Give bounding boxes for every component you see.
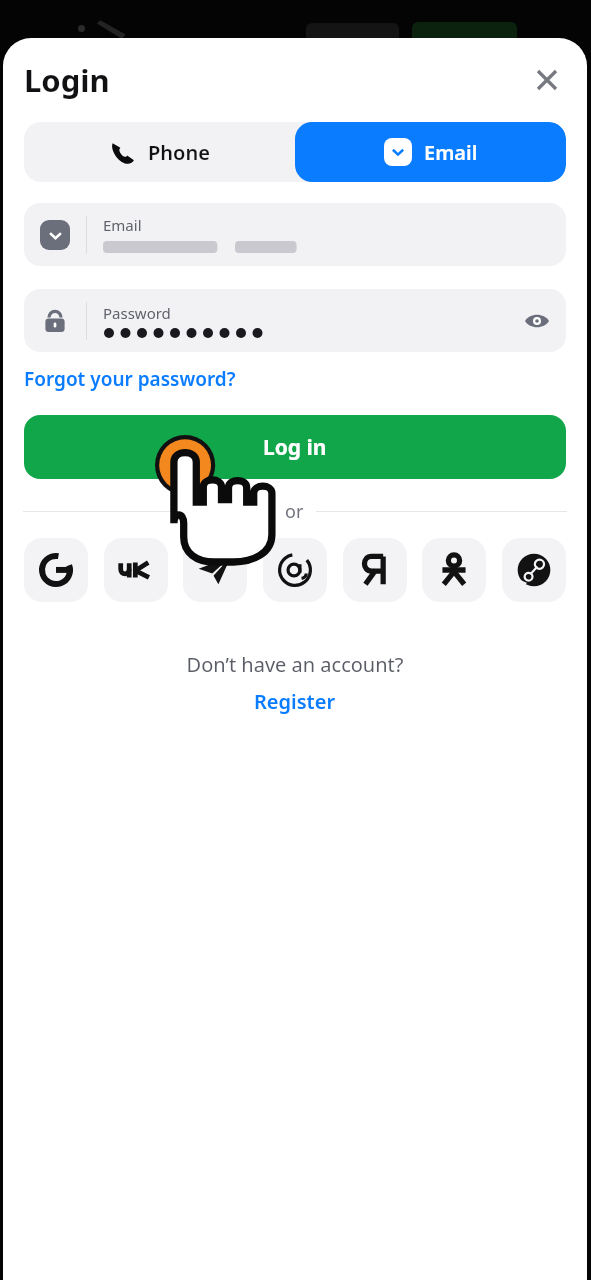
button[interactable]: Email	[24, 203, 566, 266]
button[interactable]: Log in	[24, 415, 566, 479]
button[interactable]: Sign in with Telegram	[183, 538, 247, 602]
staticText: or	[285, 499, 304, 524]
button[interactable]: Sign in with Yandex	[343, 538, 407, 602]
button[interactable]: Register	[3, 688, 587, 715]
button[interactable]: Sign in with Steam	[502, 538, 566, 602]
staticText: Log in	[263, 433, 327, 462]
button[interactable]: Show password	[519, 303, 555, 339]
staticText: Don’t have an account?	[3, 651, 587, 678]
staticText: Register	[254, 688, 336, 715]
staticText: Forgot your password?	[24, 366, 236, 392]
button[interactable]: Forgot your password?	[24, 366, 236, 392]
button[interactable]: Close	[527, 60, 567, 100]
button[interactable]: Sign in with Google	[24, 538, 88, 602]
staticText: Login	[24, 59, 110, 101]
staticText: Email	[103, 215, 142, 235]
staticText: Phone	[148, 139, 210, 166]
button[interactable]: Email	[295, 122, 566, 182]
button[interactable]: Sign in with VK	[104, 538, 168, 602]
button[interactable]: Sign in with Mail.ru	[263, 538, 327, 602]
staticText: Password	[103, 303, 171, 323]
staticText: Email	[424, 139, 478, 166]
button[interactable]: Sign in with Odnoklassniki	[422, 538, 486, 602]
button[interactable]: Password	[24, 289, 566, 352]
button[interactable]: Phone	[24, 122, 295, 182]
